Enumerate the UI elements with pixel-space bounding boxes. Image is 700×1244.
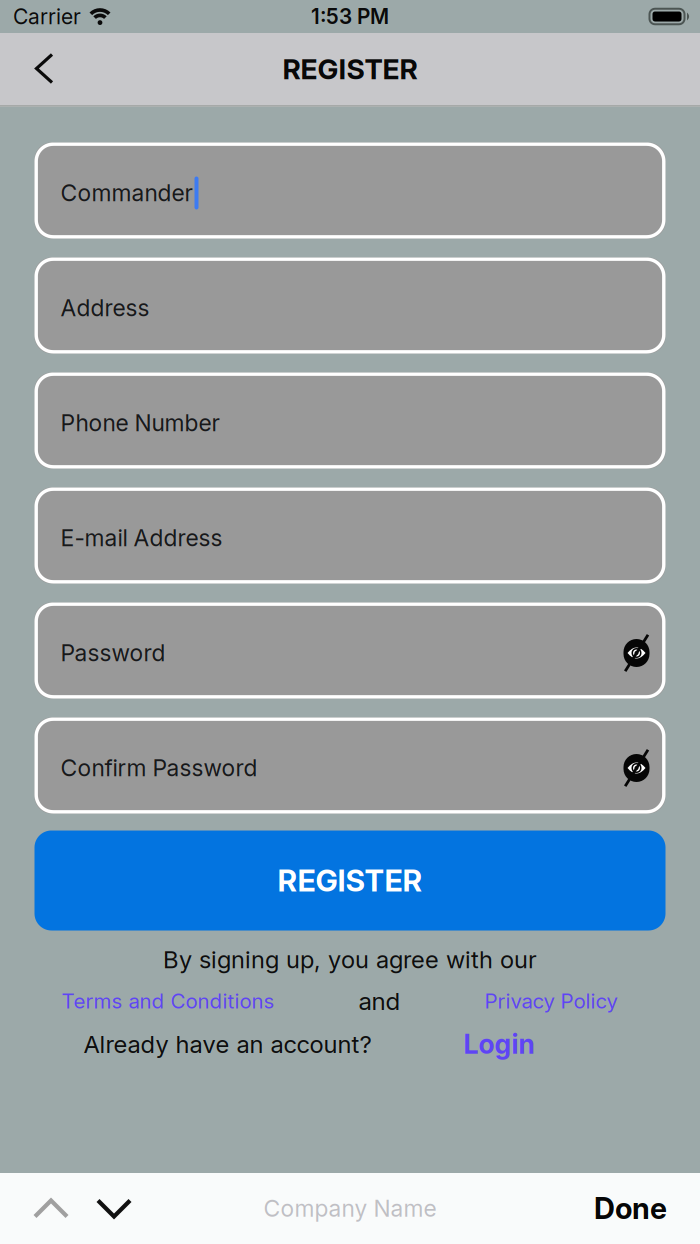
staticText: 1:53 PM [311,4,389,29]
button[interactable]: Login [463,1028,534,1060]
button[interactable]: Privacy Policy [484,989,617,1013]
staticText: Company Name [263,1195,436,1222]
staticText: Terms and Conditions [61,989,274,1013]
button[interactable]: Terms and Conditions [61,989,274,1013]
staticText: Address [60,294,149,322]
staticText: Carrier [13,4,81,29]
button[interactable]: Address [34,257,665,353]
button[interactable]: REGISTER [34,830,665,930]
staticText: Commander [60,179,192,207]
button[interactable]: Back [0,53,54,84]
staticText: Done [594,1191,667,1226]
button[interactable]: E-mail Address [34,487,665,583]
staticText: Confirm Password [60,754,257,782]
button[interactable]: Show password [621,746,651,790]
button[interactable]: Previous field [0,1198,68,1218]
button[interactable]: Password [34,602,665,698]
button[interactable]: Phone Number [34,372,665,468]
button[interactable]: Confirm Password [34,717,665,813]
staticText: Privacy Policy [484,989,617,1013]
staticText: REGISTER [277,863,422,898]
button[interactable]: Done [594,1191,700,1226]
staticText: Password [60,639,165,667]
staticText: and [358,987,400,1015]
staticText: REGISTER [282,52,417,85]
button[interactable]: Show password [621,631,651,675]
button[interactable]: Commander [34,142,665,238]
button[interactable]: Next field [68,1198,131,1218]
staticText: Phone Number [60,409,219,437]
staticText: Already have an account? [83,1030,371,1058]
staticText: E-mail Address [60,524,222,552]
staticText: By signing up, you agree with our [163,945,537,974]
staticText: Login [463,1028,534,1060]
